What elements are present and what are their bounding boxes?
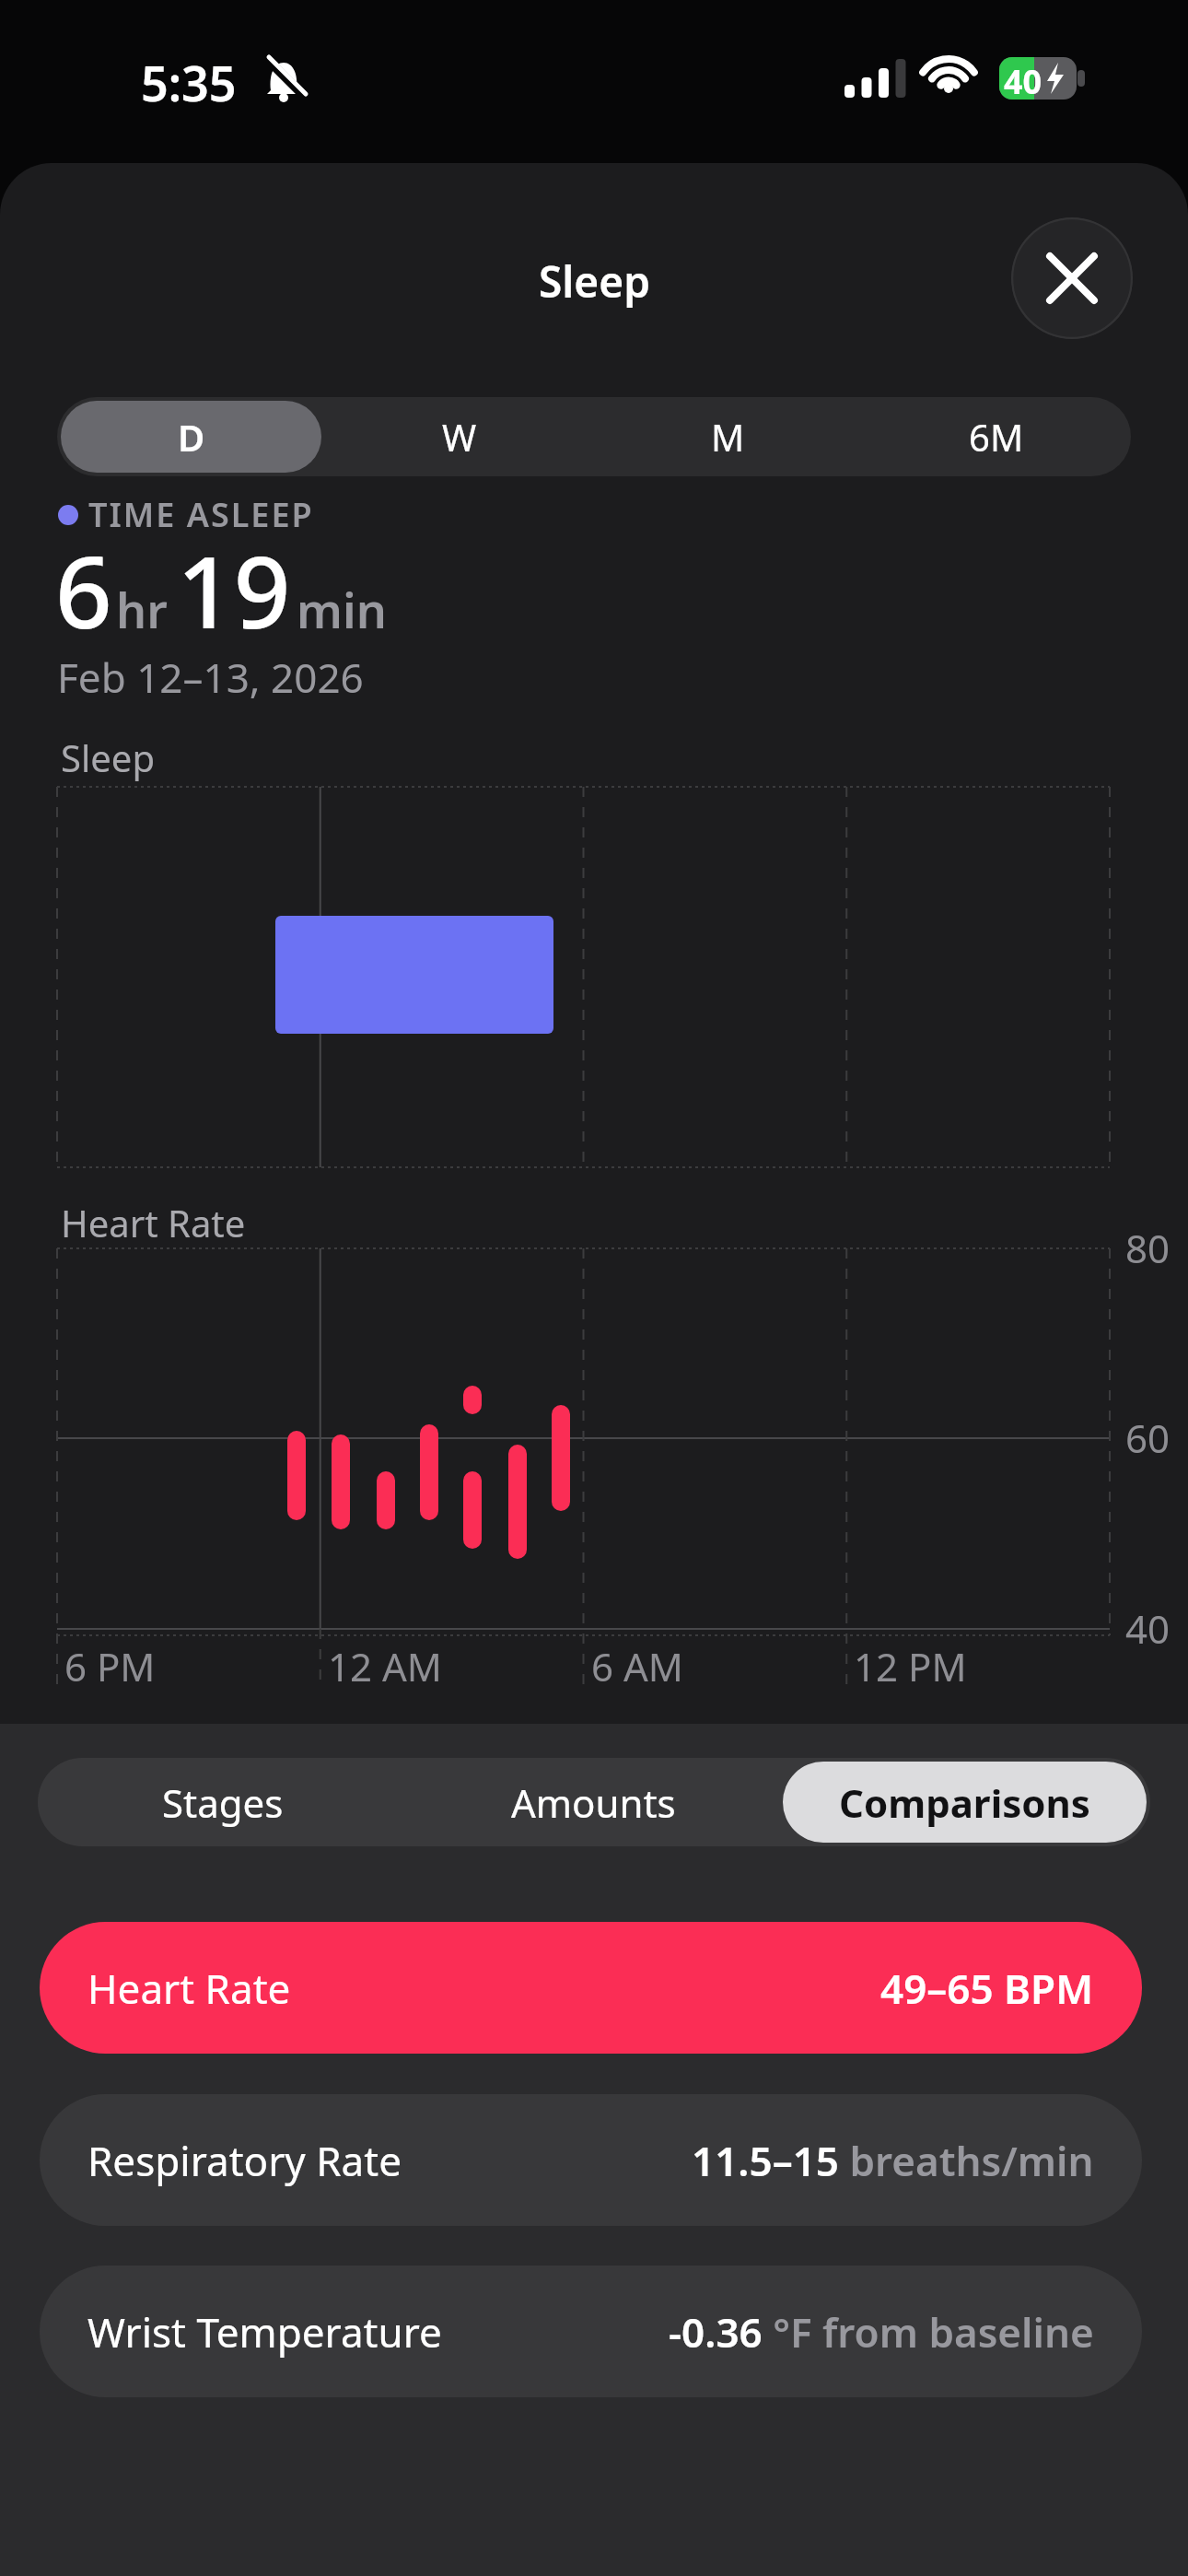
- button[interactable]: W: [325, 397, 593, 476]
- staticText: 40: [1004, 59, 1042, 100]
- staticText: 40: [1125, 1602, 1171, 1655]
- staticText: 60: [1125, 1411, 1171, 1464]
- staticText: min: [297, 577, 387, 642]
- staticText: W: [442, 412, 477, 462]
- staticText: Stages: [162, 1776, 284, 1829]
- staticText: D: [178, 412, 205, 462]
- button[interactable]: Comparisons: [783, 1762, 1147, 1843]
- staticText: Comparisons: [839, 1776, 1090, 1829]
- button[interactable]: Stages: [38, 1758, 408, 1846]
- staticText: Feb 12–13, 2026: [57, 650, 364, 705]
- staticText: Heart Rate: [61, 1198, 246, 1247]
- staticText: 80: [1125, 1222, 1171, 1274]
- button[interactable]: Wrist Temperature: [40, 2266, 1142, 2397]
- staticText: 6 PM: [64, 1640, 156, 1692]
- button[interactable]: D: [61, 401, 321, 473]
- staticText: 19: [177, 522, 291, 658]
- staticText: 6 AM: [591, 1640, 683, 1692]
- staticText: Heart Rate: [87, 1961, 291, 2016]
- staticText: Amounts: [511, 1776, 676, 1829]
- staticText: 6: [55, 522, 112, 658]
- staticText: -0.36 °F from baseline: [669, 2304, 1094, 2359]
- button[interactable]: 6M: [862, 397, 1131, 476]
- button[interactable]: Amounts: [408, 1758, 779, 1846]
- staticText: Sleep: [539, 252, 650, 310]
- button[interactable]: M: [593, 397, 862, 476]
- button[interactable]: Respiratory Rate: [40, 2094, 1142, 2226]
- staticText: 6M: [969, 412, 1024, 462]
- staticText: 11.5–15 breaths/min: [692, 2133, 1094, 2188]
- button[interactable]: [1011, 217, 1133, 339]
- staticText: Wrist Temperature: [87, 2304, 442, 2359]
- staticText: 12 AM: [328, 1640, 442, 1692]
- staticText: TIME ASLEEP: [88, 492, 314, 537]
- staticText: hr: [116, 577, 168, 642]
- staticText: 49–65 BPM: [880, 1961, 1094, 2016]
- button[interactable]: Heart Rate: [40, 1922, 1142, 2054]
- staticText: 12 PM: [854, 1640, 967, 1692]
- staticText: Respiratory Rate: [87, 2133, 402, 2188]
- staticText: 5:35: [141, 50, 237, 115]
- staticText: Sleep: [61, 732, 155, 782]
- staticText: M: [711, 412, 745, 462]
